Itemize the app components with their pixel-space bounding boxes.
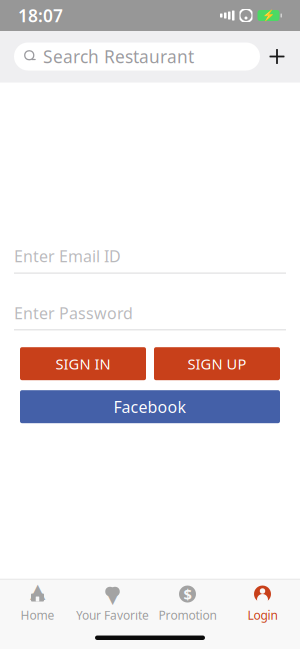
staticText: SIGN IN (55, 354, 110, 373)
staticText: Search Restaurant (43, 45, 194, 68)
staticText: Facebook (113, 396, 186, 417)
staticText: Your Favorite (76, 607, 149, 623)
staticText: Home (20, 607, 54, 623)
staticText: $ (183, 584, 191, 604)
button[interactable]: ▲ (0, 579, 75, 627)
button[interactable]: Facebook (20, 390, 280, 423)
button[interactable]: SIGN UP (154, 347, 280, 380)
button[interactable]: Search Restaurant (14, 42, 260, 70)
button[interactable]: $ (150, 579, 225, 627)
staticText: Enter Email ID (14, 245, 121, 267)
staticText: Login (247, 607, 277, 623)
staticText: Promotion (158, 607, 216, 623)
staticText: ▼ (106, 587, 119, 607)
staticText: ▲ (30, 579, 45, 602)
staticText: ⚡ (262, 9, 275, 22)
button[interactable]: ▼ (75, 579, 150, 627)
staticText: Enter Password (14, 302, 133, 323)
staticText: 18:07 (18, 4, 63, 27)
staticText: SIGN UP (187, 354, 246, 373)
button[interactable]: Add (260, 39, 294, 73)
button[interactable]: Login (225, 579, 300, 627)
button[interactable]: SIGN IN (20, 347, 146, 380)
